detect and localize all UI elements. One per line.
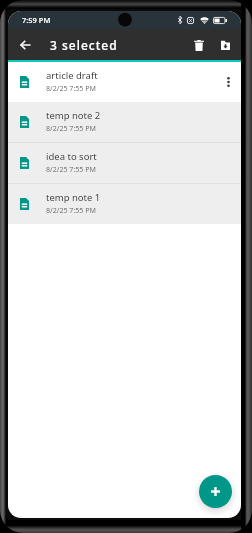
button[interactable]: temp note 1 [8,184,241,224]
button[interactable]: Delete [184,32,210,58]
staticText: 8/2/25 7:55 PM [46,123,96,133]
button[interactable]: Back [11,31,39,59]
staticText: 8/2/25 7:55 PM [46,83,96,93]
button[interactable]: idea to sort [8,143,241,183]
staticText: 8/2/25 7:55 PM [46,164,96,174]
staticText: temp note 2 [46,109,101,122]
staticText: 8/2/25 7:55 PM [46,205,96,215]
button[interactable]: temp note 2 [8,102,241,142]
staticText: temp note 1 [46,191,101,204]
button[interactable]: Move to folder [211,32,237,58]
button[interactable]: article draft [8,62,241,102]
button[interactable]: More options [215,69,241,95]
staticText: 3 selected [50,37,118,53]
button[interactable]: Add note [199,475,232,508]
staticText: article draft [46,69,98,82]
staticText: 7:59 PM [22,15,51,25]
staticText: idea to sort [46,150,97,163]
